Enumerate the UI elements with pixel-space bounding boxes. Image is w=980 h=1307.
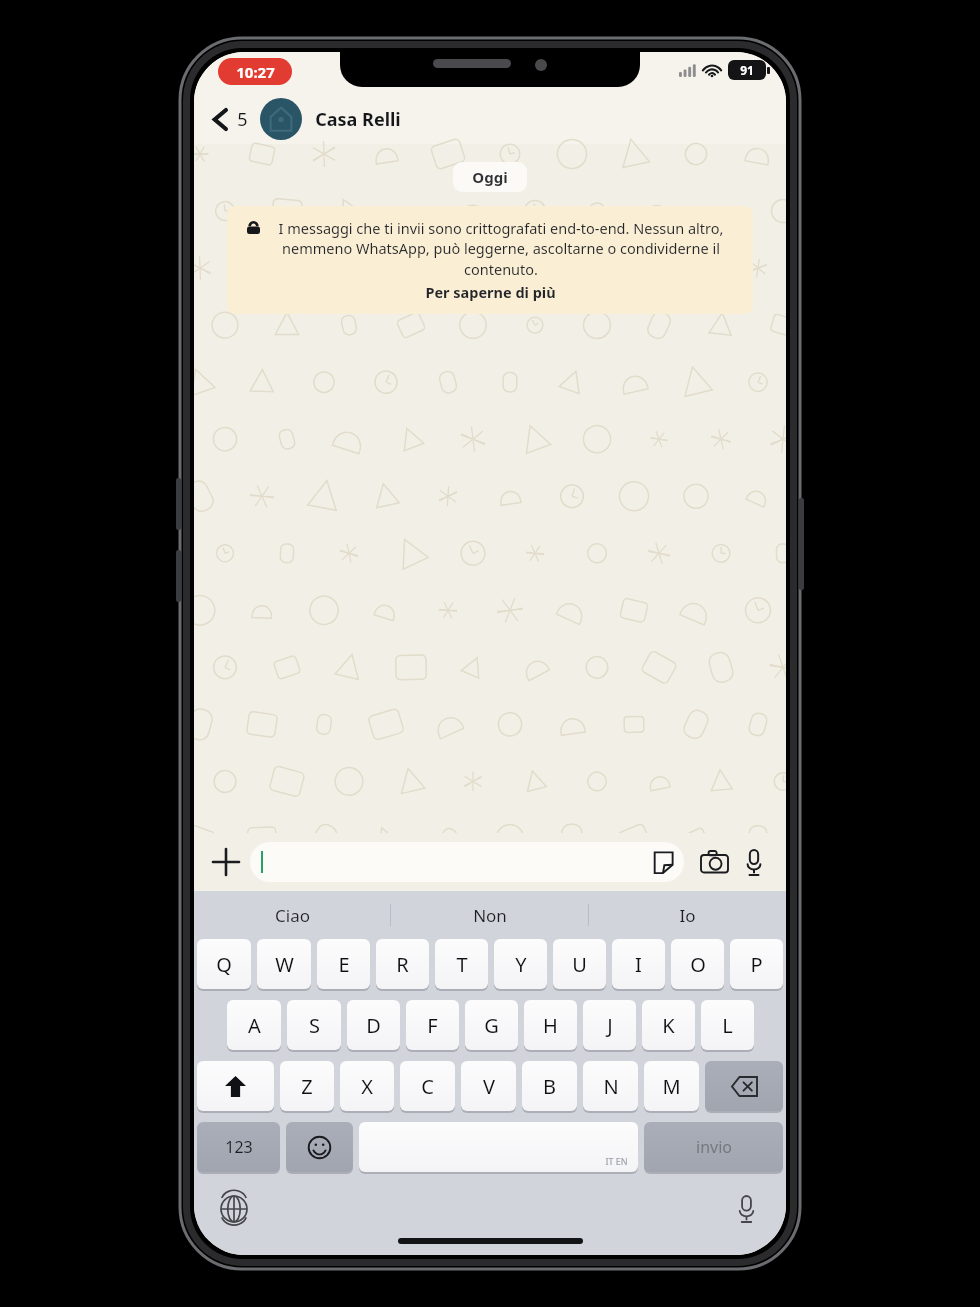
staticText: X <box>361 1073 373 1100</box>
staticText: U <box>572 951 587 978</box>
staticText: Ciao <box>275 904 310 927</box>
button[interactable]: X <box>340 1061 394 1111</box>
button[interactable]: K <box>642 1000 695 1050</box>
button[interactable]: Z <box>280 1061 334 1111</box>
staticText: V <box>483 1073 495 1100</box>
button[interactable]: R <box>376 939 429 989</box>
button[interactable]: Camera <box>696 844 732 880</box>
staticText: P <box>750 951 763 978</box>
button[interactable]: V <box>461 1061 516 1111</box>
staticText: M <box>662 1073 681 1100</box>
button[interactable]: Casa Relli <box>260 98 786 140</box>
staticText: S <box>309 1012 320 1039</box>
staticText: Non <box>473 904 507 927</box>
button[interactable]: W <box>257 939 311 989</box>
button[interactable]: Attach <box>208 844 244 880</box>
staticText: IT EN <box>605 1155 628 1167</box>
other: Back <box>212 107 229 132</box>
button[interactable]: L <box>701 1000 754 1050</box>
button[interactable]: Dictation <box>726 1189 766 1229</box>
staticText: 91 <box>740 62 754 78</box>
button[interactable]: B <box>522 1061 577 1111</box>
staticText: C <box>421 1073 434 1100</box>
button[interactable]: S <box>287 1000 341 1050</box>
button[interactable]: Oggi <box>453 162 527 192</box>
button[interactable]: T <box>435 939 488 989</box>
staticText: 10:27 <box>236 62 275 82</box>
button[interactable]: Y <box>494 939 547 989</box>
button[interactable]: Ciao <box>194 891 390 939</box>
button[interactable]: O <box>671 939 724 989</box>
button[interactable]: H <box>524 1000 577 1050</box>
button[interactable]: M <box>644 1061 699 1111</box>
button[interactable]: F <box>406 1000 459 1050</box>
staticText: L <box>722 1012 733 1039</box>
button[interactable]: A <box>227 1000 281 1050</box>
staticText: F <box>427 1012 438 1039</box>
staticText: A <box>248 1012 261 1039</box>
button[interactable]: Q <box>197 939 251 989</box>
button[interactable]: I <box>612 939 665 989</box>
button[interactable]: invio <box>644 1122 783 1172</box>
staticText: I <box>635 951 642 978</box>
button[interactable]: Back <box>208 101 252 138</box>
button[interactable]: J <box>583 1000 636 1050</box>
button[interactable]: Change keyboard <box>214 1189 254 1229</box>
staticText: H <box>543 1012 558 1039</box>
button[interactable]: 123 <box>197 1122 280 1172</box>
staticText: Io <box>679 904 696 927</box>
staticText: Y <box>515 951 527 978</box>
button[interactable]: Voice message <box>736 844 772 880</box>
staticText: N <box>603 1073 619 1100</box>
staticText: K <box>662 1012 675 1039</box>
staticText: D <box>366 1012 381 1039</box>
button[interactable]: U <box>553 939 606 989</box>
staticText: I messaggi che ti invii sono crittografa… <box>265 218 737 280</box>
button[interactable]: I messaggi che ti invii sono crittografa… <box>227 206 753 314</box>
button[interactable]: Io <box>589 891 786 939</box>
staticText: Casa Relli <box>315 107 401 132</box>
staticText: Per saperne di più <box>425 282 556 302</box>
button[interactable]: Non <box>391 891 588 939</box>
staticText: E <box>338 951 350 978</box>
staticText: 5 <box>237 107 248 132</box>
staticText: B <box>543 1073 556 1100</box>
staticText: Q <box>216 951 232 978</box>
button[interactable]: N <box>583 1061 638 1111</box>
staticText: R <box>396 951 409 978</box>
button[interactable]: G <box>465 1000 518 1050</box>
staticText: O <box>690 951 706 978</box>
staticText: W <box>275 951 294 978</box>
button[interactable]: Backspace <box>705 1061 783 1111</box>
staticText: J <box>607 1012 613 1039</box>
staticText: Z <box>301 1073 313 1100</box>
button[interactable]: Emoji <box>286 1122 353 1172</box>
staticText: invio <box>696 1136 732 1158</box>
button[interactable]: D <box>347 1000 400 1050</box>
other: Sticker <box>651 851 674 874</box>
button[interactable]: Sticker <box>250 842 684 882</box>
button[interactable]: Space <box>359 1122 638 1172</box>
button[interactable]: C <box>400 1061 455 1111</box>
staticText: Oggi <box>472 167 508 187</box>
staticText: T <box>456 951 468 978</box>
button[interactable]: P <box>730 939 783 989</box>
staticText: G <box>484 1012 499 1039</box>
button[interactable]: Shift <box>197 1061 274 1111</box>
staticText: 123 <box>225 1136 253 1158</box>
button[interactable]: E <box>317 939 370 989</box>
